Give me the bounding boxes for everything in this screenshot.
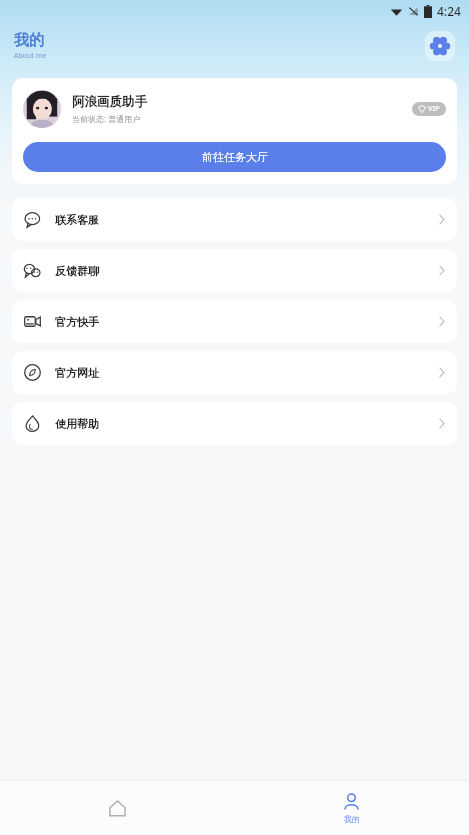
button[interactable]: Settings: [425, 31, 455, 61]
button[interactable]: 前往任务大厅: [23, 142, 446, 172]
staticText: VIP: [428, 104, 440, 114]
staticText: 我的: [344, 814, 360, 824]
staticText: 官方网址: [55, 366, 99, 380]
staticText: 官方快手: [55, 315, 99, 329]
staticText: 联系客服: [55, 213, 99, 227]
button[interactable]: 官方网址: [12, 351, 457, 394]
button[interactable]: 反馈群聊: [12, 249, 457, 292]
staticText: 我的: [14, 31, 44, 50]
staticText: 4:24: [437, 3, 461, 19]
button[interactable]: VIP status: [412, 102, 446, 116]
staticText: 使用帮助: [55, 417, 99, 431]
staticText: 前往任务大厅: [202, 150, 268, 164]
staticText: 当前状态: 普通用户: [72, 113, 141, 124]
staticText: 阿浪画质助手: [72, 94, 147, 110]
staticText: 反馈群聊: [55, 264, 99, 278]
button[interactable]: Mine: [234, 781, 469, 835]
staticText: About me: [14, 51, 47, 61]
button[interactable]: 使用帮助: [12, 402, 457, 445]
button[interactable]: 联系客服: [12, 198, 457, 241]
button[interactable]: Home: [0, 781, 234, 835]
button[interactable]: 官方快手: [12, 300, 457, 343]
